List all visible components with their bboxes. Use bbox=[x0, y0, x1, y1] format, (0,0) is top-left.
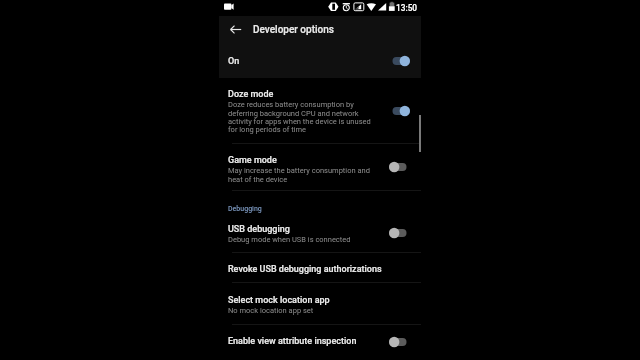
staticText: Debug mode when USB is connected bbox=[228, 235, 351, 244]
staticText: On bbox=[228, 56, 240, 67]
button[interactable]: Toggle bbox=[389, 161, 410, 173]
staticText: Developer options bbox=[253, 24, 334, 36]
staticText: Doze mode bbox=[228, 89, 274, 100]
staticText: 13:50 bbox=[396, 3, 418, 13]
staticText: Debugging bbox=[228, 205, 262, 213]
button[interactable]: Toggle bbox=[389, 227, 410, 239]
button[interactable]: Toggle bbox=[389, 55, 410, 67]
button[interactable]: Enable view attribute inspection bbox=[219, 325, 421, 359]
button[interactable]: Toggle bbox=[389, 336, 410, 348]
button[interactable]: Game mode bbox=[219, 144, 421, 190]
staticText: USB debugging bbox=[228, 224, 290, 235]
staticText: May increase the battery consumption and… bbox=[228, 166, 376, 183]
button[interactable]: Revoke USB debugging authorizations bbox=[219, 253, 421, 282]
button[interactable]: Back bbox=[219, 16, 253, 44]
staticText: Select mock location app bbox=[228, 295, 330, 306]
staticText: No mock location app set bbox=[228, 306, 314, 315]
button[interactable]: USB debugging bbox=[219, 214, 421, 252]
staticText: Enable view attribute inspection bbox=[228, 336, 357, 347]
staticText: Doze reduces battery consumption by defe… bbox=[228, 100, 376, 133]
staticText: Revoke USB debugging authorizations bbox=[228, 264, 382, 275]
button[interactable]: Doze mode bbox=[219, 79, 421, 143]
button[interactable]: Toggle bbox=[389, 105, 410, 117]
button[interactable]: On bbox=[219, 44, 421, 78]
button[interactable]: Select mock location app bbox=[219, 283, 421, 324]
staticText: Game mode bbox=[228, 155, 277, 166]
